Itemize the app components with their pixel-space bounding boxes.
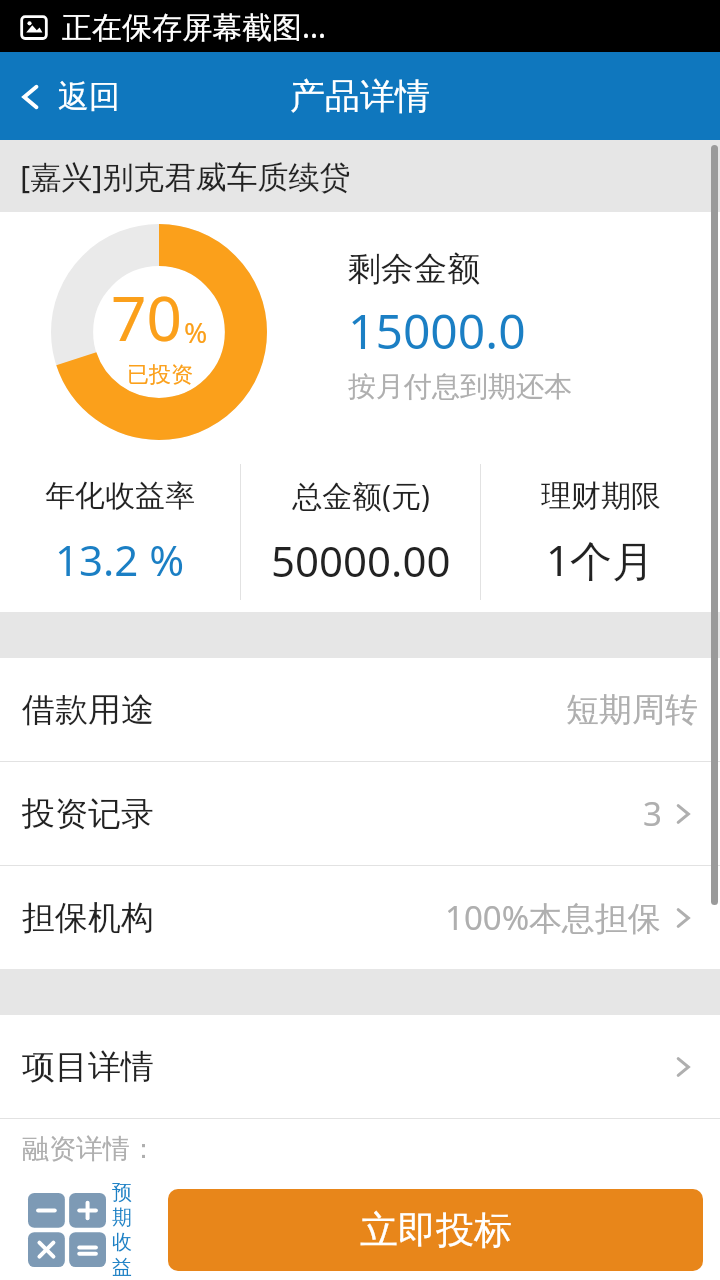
button[interactable]: 投资记录 — [0, 762, 720, 865]
button[interactable]: 预期收益计算器 — [28, 1180, 132, 1280]
staticText: 13.2 % — [55, 531, 185, 588]
staticText: 剩余金额 — [348, 248, 480, 290]
staticText: 返回 — [58, 77, 120, 116]
staticText: 收 — [112, 1230, 132, 1255]
staticText: 100%本息担保 — [445, 895, 662, 940]
staticText: 预 — [112, 1180, 132, 1205]
staticText: 已投资 — [127, 361, 193, 389]
button[interactable]: 项目详情 — [0, 1015, 720, 1118]
staticText: 投资记录 — [22, 793, 154, 835]
staticText: 短期周转 — [566, 689, 698, 731]
staticText: 期 — [112, 1205, 132, 1230]
staticText: 融资详情： — [22, 1132, 157, 1166]
staticText: 70 — [111, 275, 182, 359]
staticText: 总金额(元) — [292, 475, 430, 516]
staticText: 15000.0 — [348, 298, 526, 363]
staticText: 正在保存屏幕截图... — [62, 6, 327, 47]
staticText: 项目详情 — [22, 1046, 154, 1088]
button[interactable]: 担保机构 — [0, 866, 720, 969]
staticText: 3 — [643, 791, 662, 836]
staticText: 年化收益率 — [45, 477, 195, 515]
button[interactable]: 借款用途 — [0, 658, 720, 761]
staticText: 担保机构 — [22, 897, 154, 939]
staticText: 1个月 — [546, 531, 655, 588]
staticText: 立即投标 — [360, 1206, 512, 1254]
staticText: 理财期限 — [541, 477, 661, 515]
staticText: 益 — [112, 1255, 132, 1280]
staticText: 借款用途 — [22, 689, 154, 731]
staticText: 50000.00 — [271, 532, 451, 589]
button[interactable]: 立即投标 — [168, 1189, 703, 1271]
staticText: % — [184, 313, 208, 351]
staticText: 产品详情 — [290, 74, 430, 118]
staticText: 按月付息到期还本 — [348, 369, 572, 404]
button[interactable]: 返回 — [14, 77, 120, 116]
staticText: [嘉兴]别克君威车质续贷 — [20, 155, 351, 197]
